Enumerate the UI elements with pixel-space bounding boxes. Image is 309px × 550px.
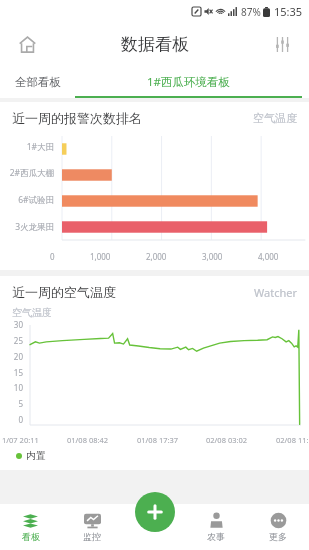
staticText: 0	[50, 251, 55, 262]
button[interactable]: Filter	[265, 27, 299, 61]
staticText: 15	[0, 367, 23, 378]
staticText: 10	[0, 382, 23, 393]
staticText: 0	[0, 414, 23, 425]
staticText: 5	[0, 398, 23, 409]
staticText: 87%	[241, 5, 261, 19]
staticText: 2,000	[146, 251, 167, 262]
staticText: 2#西瓜大棚	[0, 167, 54, 179]
staticText: 空气温度	[12, 306, 52, 319]
staticText: 1#西瓜环境看板	[147, 74, 231, 90]
staticText: 3,000	[202, 251, 223, 262]
staticText: 20	[0, 351, 23, 362]
button[interactable]: 监控	[61, 504, 123, 550]
staticText: Watcher	[254, 285, 297, 300]
staticText: 15:35	[274, 4, 303, 19]
staticText: 30	[0, 319, 23, 330]
button[interactable]: 看板	[0, 504, 61, 550]
staticText: 3火龙果田	[0, 221, 54, 233]
staticText: 25	[0, 335, 23, 346]
staticText: 02/08 03:02	[206, 435, 248, 445]
staticText: 农事	[207, 531, 225, 542]
staticText: 1#大田	[0, 141, 54, 153]
button[interactable]: 农事	[185, 504, 247, 550]
staticText: 内置	[26, 449, 46, 462]
staticText: 监控	[83, 531, 101, 542]
staticText: 全部看板	[15, 75, 61, 89]
button[interactable]: 全部看板	[8, 66, 68, 98]
staticText: 6#试验田	[0, 194, 54, 206]
button[interactable]: 1#西瓜环境看板	[68, 66, 309, 98]
button[interactable]: Home	[10, 27, 44, 61]
staticText: 近一周的报警次数排名	[12, 110, 142, 126]
staticText: 空气温度	[253, 111, 297, 125]
button[interactable]: 更多	[247, 504, 309, 550]
staticText: 1,000	[90, 251, 111, 262]
staticText: 更多	[269, 531, 287, 542]
staticText: 4,000	[258, 251, 279, 262]
staticText: 看板	[22, 531, 40, 542]
staticText: 02/08 11:	[276, 435, 309, 445]
staticText: 01/08 17:37	[137, 435, 179, 445]
staticText: 近一周的空气温度	[12, 284, 116, 300]
staticText: 1/07 20:11	[2, 435, 39, 445]
staticText: 数据看板	[121, 34, 189, 55]
button[interactable]: Add	[135, 492, 175, 532]
staticText: 01/08 08:42	[67, 435, 109, 445]
